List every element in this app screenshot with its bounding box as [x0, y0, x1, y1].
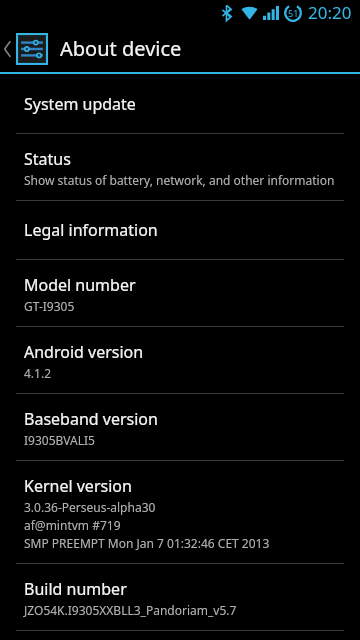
- staticText: SMP PREEMPT Mon Jan 7 01:32:46 CET 2013: [24, 535, 270, 551]
- staticText: Kernel version: [24, 475, 132, 497]
- staticText: 3.0.36-Perseus-alpha30: [24, 499, 156, 515]
- staticText: af@mintvm #719: [24, 517, 121, 533]
- staticText: GT-I9305: [24, 298, 75, 314]
- staticText: Android version: [24, 341, 144, 363]
- button[interactable]: Kernel version: [0, 461, 360, 563]
- staticText: Status: [24, 148, 71, 170]
- button[interactable]: Legal information: [0, 201, 360, 259]
- staticText: Build number: [24, 578, 127, 600]
- staticText: Legal information: [24, 219, 158, 241]
- staticText: About device: [60, 35, 182, 62]
- staticText: 4.1.2: [24, 365, 52, 381]
- staticText: Model number: [24, 274, 136, 296]
- button[interactable]: System update: [0, 75, 360, 133]
- staticText: 51: [288, 7, 299, 19]
- staticText: Show status of battery, network, and oth…: [24, 172, 335, 188]
- button[interactable]: Android version: [0, 327, 360, 393]
- button[interactable]: Back: [0, 27, 50, 71]
- staticText: JZO54K.I9305XXBLL3_Pandoriam_v5.7: [24, 602, 237, 618]
- button[interactable]: Status: [0, 134, 360, 200]
- staticText: Baseband version: [24, 408, 158, 430]
- staticText: System update: [24, 93, 136, 115]
- button[interactable]: Build number: [0, 564, 360, 630]
- button[interactable]: Baseband version: [0, 394, 360, 460]
- staticText: I9305BVALI5: [24, 432, 95, 448]
- staticText: 20:20: [308, 1, 352, 24]
- button[interactable]: Model number: [0, 260, 360, 326]
